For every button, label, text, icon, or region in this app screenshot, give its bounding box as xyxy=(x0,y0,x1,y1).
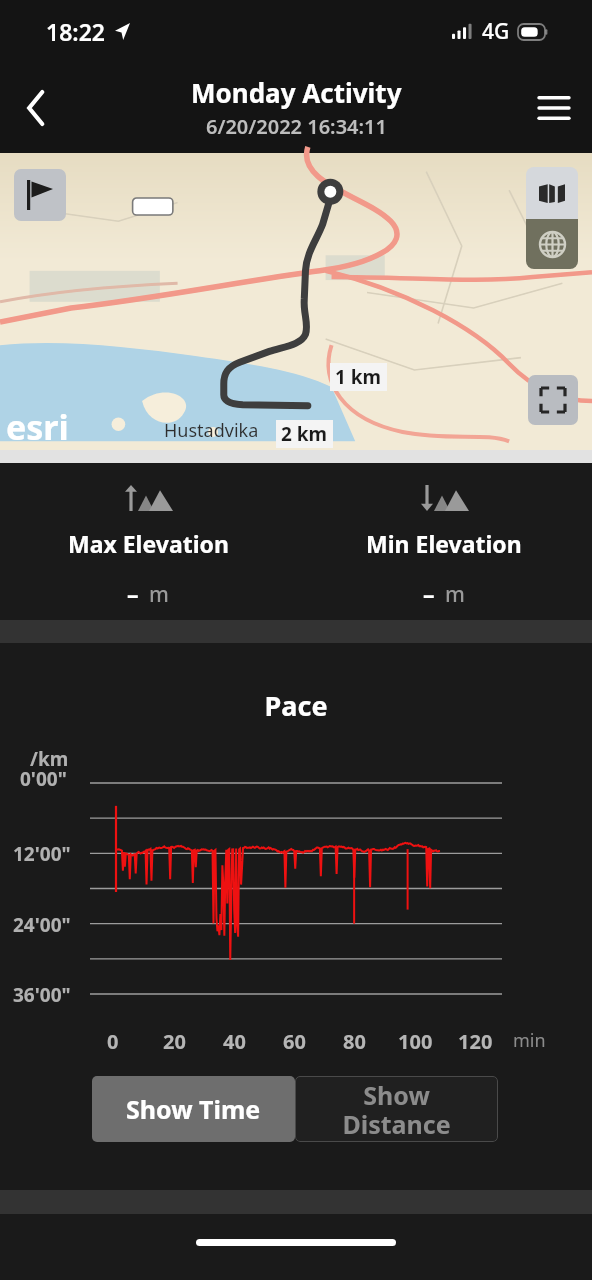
staticText: – xyxy=(423,578,435,609)
staticText: Pace xyxy=(0,687,592,724)
staticText: 6/20/2022 16:34:11 xyxy=(206,113,387,140)
staticText: min xyxy=(513,1028,546,1053)
staticText: 0 xyxy=(107,1028,119,1055)
button[interactable]: Show Time xyxy=(92,1076,295,1142)
staticText: 120 xyxy=(458,1028,493,1055)
staticText: 80 xyxy=(343,1028,366,1055)
staticText: 18:22 xyxy=(46,16,105,47)
staticText: 24'00" xyxy=(13,912,71,938)
staticText: 4G xyxy=(482,17,510,46)
button[interactable]: Min Elevation xyxy=(296,463,592,620)
staticText: Show Distance xyxy=(342,1078,451,1141)
staticText: Max Elevation xyxy=(68,528,229,559)
staticText: Hustadvika xyxy=(164,418,259,443)
button[interactable]: Menu xyxy=(516,62,592,153)
staticText: 7 km xyxy=(219,546,266,572)
staticText: 20 xyxy=(163,1028,186,1055)
button[interactable]: Show Distance xyxy=(295,1076,498,1142)
staticText: Min Elevation xyxy=(366,528,522,559)
staticText: esri xyxy=(6,404,69,450)
staticText: Show Time xyxy=(126,1092,261,1126)
staticText: /km xyxy=(30,746,69,772)
button[interactable]: Back xyxy=(0,62,72,153)
staticText: 60 xyxy=(283,1028,306,1055)
staticText: Monday Activity xyxy=(191,75,402,110)
button[interactable]: Map layers xyxy=(526,167,578,219)
button[interactable]: Basemap xyxy=(526,219,578,269)
staticText: m xyxy=(445,580,465,609)
staticText: 40 xyxy=(223,1028,246,1055)
button[interactable]: Start marker xyxy=(14,169,66,221)
button[interactable]: Max Elevation xyxy=(0,463,296,620)
staticText: 36'00" xyxy=(13,982,71,1008)
staticText: 2 km xyxy=(281,421,328,447)
button[interactable]: Full screen map xyxy=(528,375,578,425)
staticText: m xyxy=(149,580,169,609)
staticText: 100 xyxy=(398,1028,433,1055)
staticText: 0'00" xyxy=(20,766,67,792)
staticText: – xyxy=(127,578,139,609)
staticText: 1 km xyxy=(335,364,382,390)
staticText: 12'00" xyxy=(13,841,71,867)
